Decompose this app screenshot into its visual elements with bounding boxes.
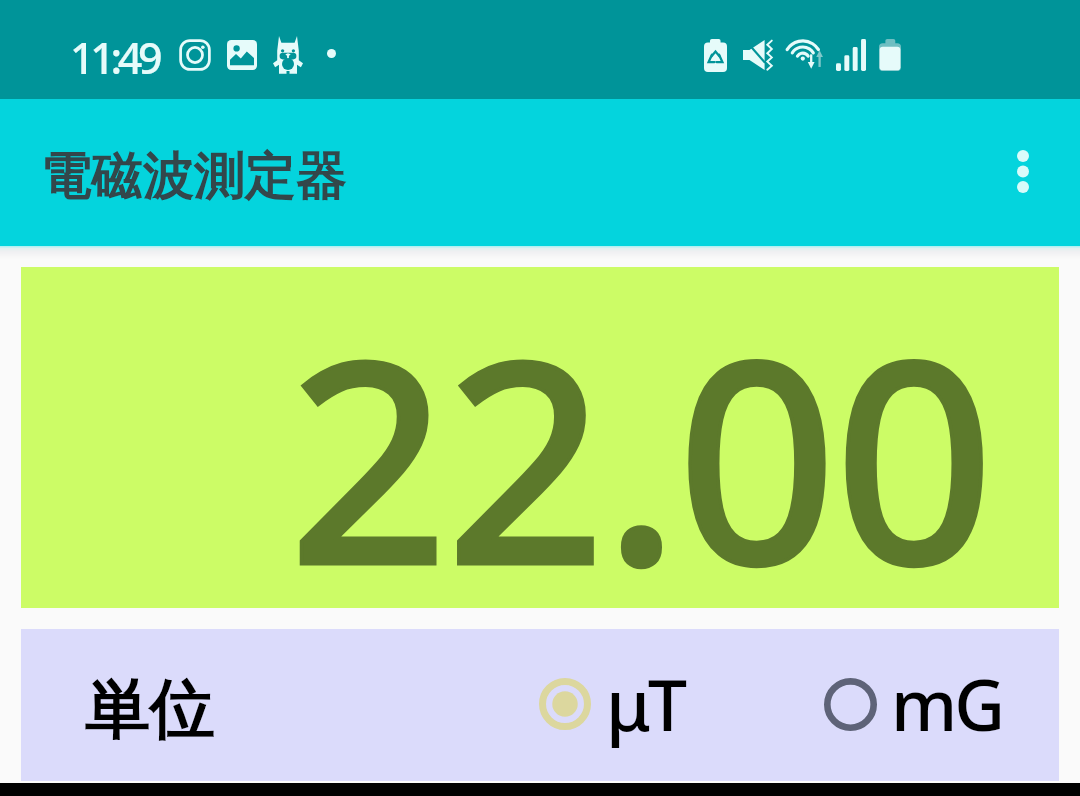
staticText: 単位 — [85, 668, 215, 750]
staticText: 22.00 — [290, 268, 993, 609]
button[interactable]: More options — [981, 129, 1065, 213]
button[interactable]: mG — [821, 655, 1021, 753]
staticText: 22.00 — [290, 268, 993, 609]
staticText: 電磁波測定器 — [41, 144, 347, 208]
button[interactable]: μT — [536, 655, 711, 753]
staticText: μT — [606, 656, 685, 751]
staticText: 電磁波測定器 — [41, 144, 347, 208]
button[interactable]: 22.00 — [21, 267, 1059, 608]
staticText: mG — [891, 656, 1003, 751]
staticText: 11:49 — [70, 28, 159, 87]
staticText: 単位 — [85, 668, 215, 750]
